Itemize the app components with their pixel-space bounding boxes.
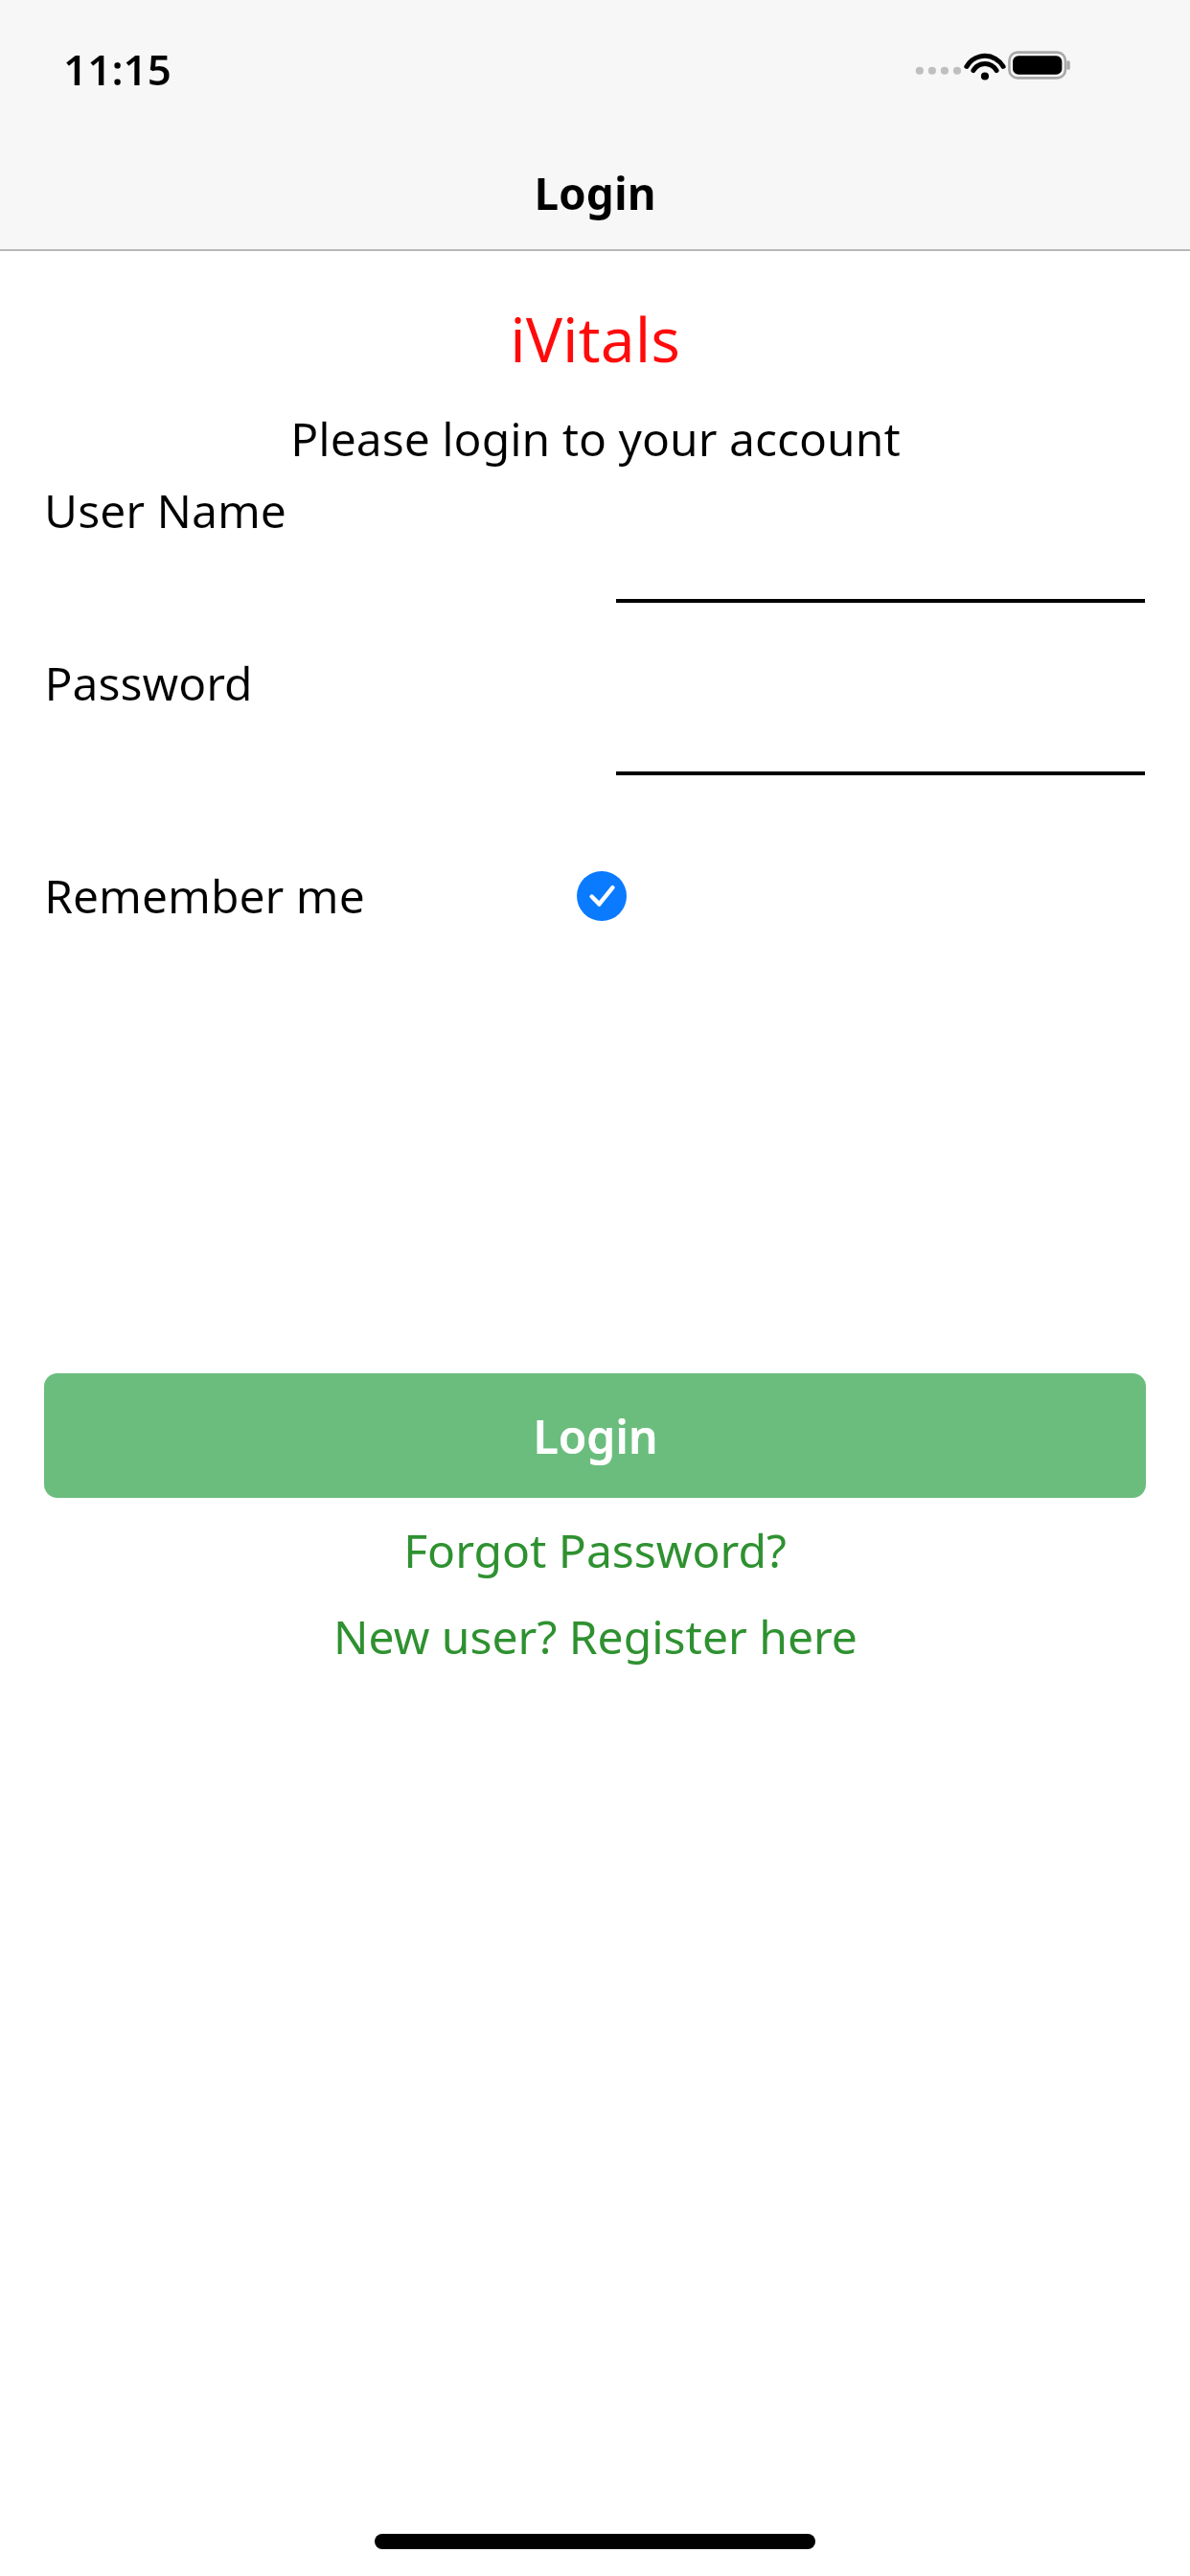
staticText: New user? Register here [333, 1605, 858, 1667]
other: Remember me checked [575, 869, 629, 923]
staticText: Please login to your account [290, 407, 901, 470]
button[interactable]: New user? Register here [211, 1595, 979, 1677]
button[interactable]: Password [0, 632, 1190, 776]
staticText: Forgot Password? [403, 1519, 787, 1581]
staticText: Login [533, 1405, 658, 1467]
staticText: 11:15 [63, 40, 172, 98]
button[interactable]: Forgot Password? [287, 1508, 903, 1591]
button[interactable]: Remember me [0, 864, 1190, 927]
button[interactable]: User Name [0, 460, 1190, 604]
staticText: Login [534, 163, 656, 223]
staticText: iVitals [510, 297, 680, 380]
button[interactable]: Login [44, 1373, 1146, 1498]
staticText: User Name [44, 479, 286, 541]
staticText: Password [44, 652, 253, 714]
staticText: Remember me [44, 864, 365, 927]
